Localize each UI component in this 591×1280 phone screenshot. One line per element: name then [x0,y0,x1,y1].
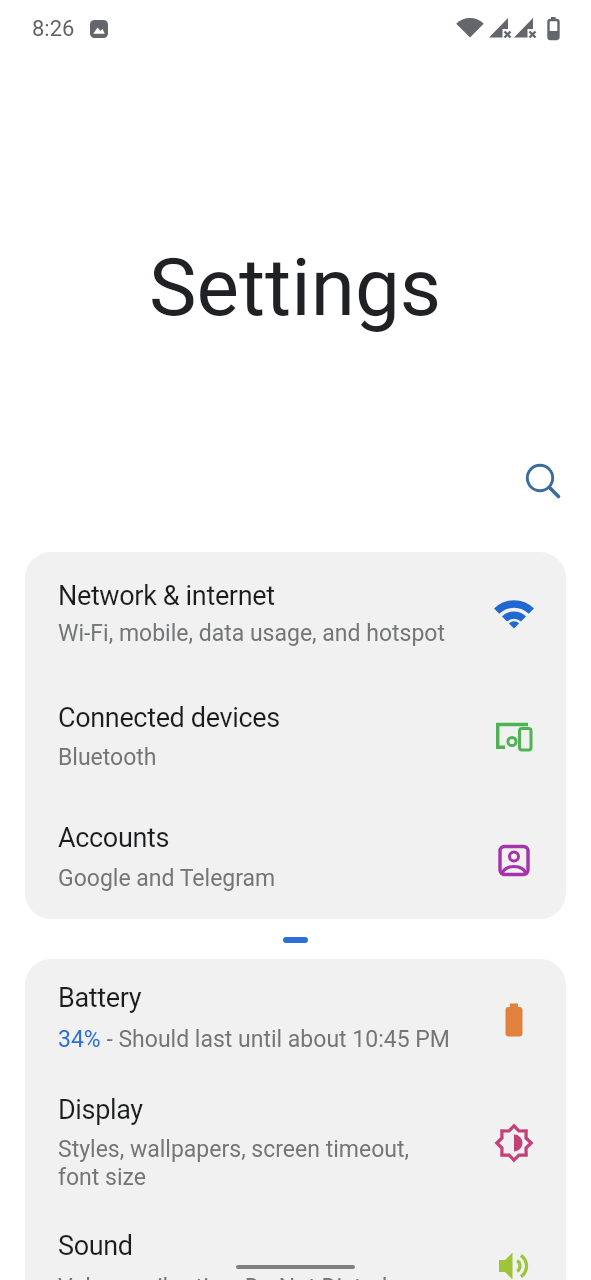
button[interactable]: Battery [25,959,566,1060]
button[interactable]: Display [25,1060,566,1190]
button[interactable]: Network & internet [25,552,566,674]
staticText: Volume, vibration, Do Not Disturb [58,1274,395,1280]
staticText: Display [58,1094,143,1126]
staticText: 8:26 [32,16,75,42]
staticText: Sound [58,1230,133,1262]
staticText: Accounts [58,822,170,854]
button[interactable] [514,450,570,506]
button[interactable]: Connected devices [25,674,566,796]
staticText: 34% - Should last until about 10:45 PM [58,1026,450,1053]
button[interactable]: Sound [25,1189,566,1280]
staticText: Network & internet [58,580,275,612]
staticText: Google and Telegram [58,865,276,892]
button[interactable]: Accounts [25,796,566,919]
staticText: Connected devices [58,702,280,734]
staticText: Wi-Fi, mobile, data usage, and hotspot [58,620,445,647]
staticText: font size [58,1164,146,1191]
staticText: Battery [58,982,142,1014]
staticText: Styles, wallpapers, screen timeout, [58,1136,409,1163]
staticText: Settings [149,241,442,335]
staticText: Bluetooth [58,744,157,771]
